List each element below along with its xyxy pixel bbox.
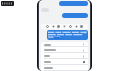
- button[interactable]: Logo: [1, 1, 14, 6]
- button[interactable]: [41, 59, 88, 65]
- button[interactable]: Action 4: [69, 25, 72, 28]
- button[interactable]: Message: [62, 13, 88, 18]
- button[interactable]: Action 1: [52, 25, 55, 28]
- button[interactable]: [41, 65, 88, 71]
- button[interactable]: Action 5: [75, 25, 78, 28]
- button[interactable]: Message: [59, 1, 88, 6]
- button[interactable]: Action 0: [46, 25, 49, 28]
- button[interactable]: Action 3: [63, 25, 66, 28]
- button[interactable]: [41, 47, 88, 53]
- button[interactable]: Action 6: [80, 25, 83, 28]
- button[interactable]: Action 2: [57, 25, 60, 28]
- button[interactable]: Selected message: [47, 30, 88, 40]
- button[interactable]: Message: [41, 8, 49, 12]
- button[interactable]: [41, 53, 88, 59]
- button[interactable]: [41, 42, 88, 47]
